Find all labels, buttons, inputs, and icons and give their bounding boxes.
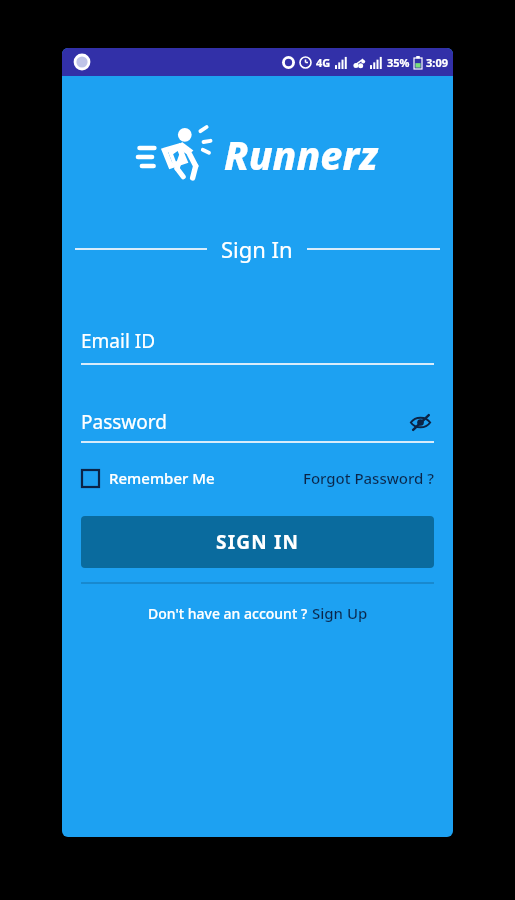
staticText: Password <box>81 409 167 435</box>
staticText: Sign In <box>221 234 293 264</box>
staticText: 4G <box>316 55 331 70</box>
staticText: SIGN IN <box>216 529 300 555</box>
staticText: Don't have an account ? <box>148 604 308 623</box>
button[interactable]: Email ID <box>81 328 434 365</box>
staticText: Runnerz <box>224 128 378 181</box>
staticText: Email ID <box>81 328 156 354</box>
button[interactable]: SIGN IN <box>81 516 434 568</box>
button[interactable]: Sign Up <box>312 603 368 623</box>
button[interactable]: Password <box>81 408 434 443</box>
staticText: Remember Me <box>109 468 215 488</box>
button[interactable]: Show password <box>406 408 434 436</box>
button[interactable]: Forgot Password ? <box>303 468 434 488</box>
button[interactable]: Remember Me <box>81 468 215 488</box>
staticText: 3:09 <box>426 55 448 70</box>
staticText: 35% <box>387 55 410 70</box>
